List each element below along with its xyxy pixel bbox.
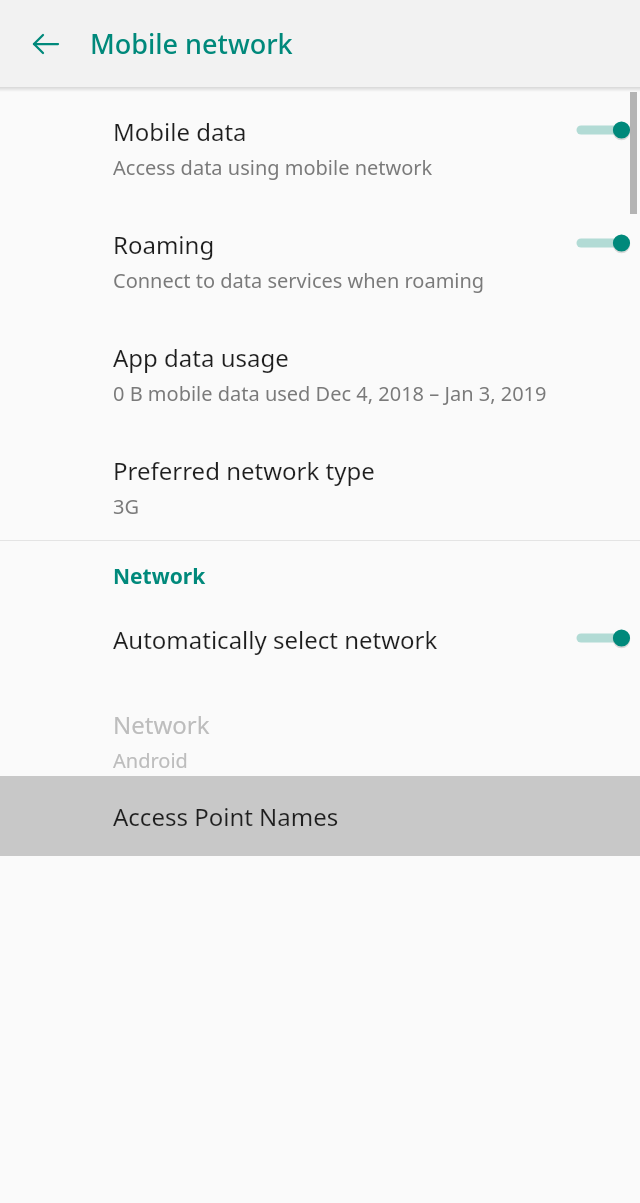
button[interactable]: [570, 111, 632, 149]
button[interactable]: Mobile data: [0, 101, 640, 214]
staticText: 3G: [113, 493, 139, 520]
staticText: Mobile data: [113, 115, 247, 148]
staticText: Access Point Names: [113, 800, 339, 833]
staticText: Android: [113, 747, 188, 774]
staticText: Automatically select network: [113, 623, 438, 656]
staticText: Preferred network type: [113, 454, 375, 487]
staticText: Network: [113, 708, 210, 741]
button[interactable]: App data usage: [0, 327, 640, 440]
staticText: Mobile network: [90, 25, 293, 62]
button[interactable]: Preferred network type: [0, 440, 640, 540]
staticText: 0 B mobile data used Dec 4, 2018 – Jan 3…: [113, 380, 547, 407]
button[interactable]: [570, 619, 632, 657]
staticText: Roaming: [113, 228, 215, 261]
button[interactable]: [570, 224, 632, 262]
button[interactable]: Network: [0, 690, 640, 776]
button[interactable]: Roaming: [0, 214, 640, 327]
staticText: Network: [113, 562, 206, 591]
button[interactable]: Access Point Names: [0, 776, 640, 856]
button[interactable]: Back: [30, 28, 62, 60]
button[interactable]: Automatically select network: [0, 597, 640, 690]
staticText: Connect to data services when roaming: [113, 267, 485, 294]
staticText: Access data using mobile network: [113, 154, 433, 181]
staticText: App data usage: [113, 341, 289, 374]
